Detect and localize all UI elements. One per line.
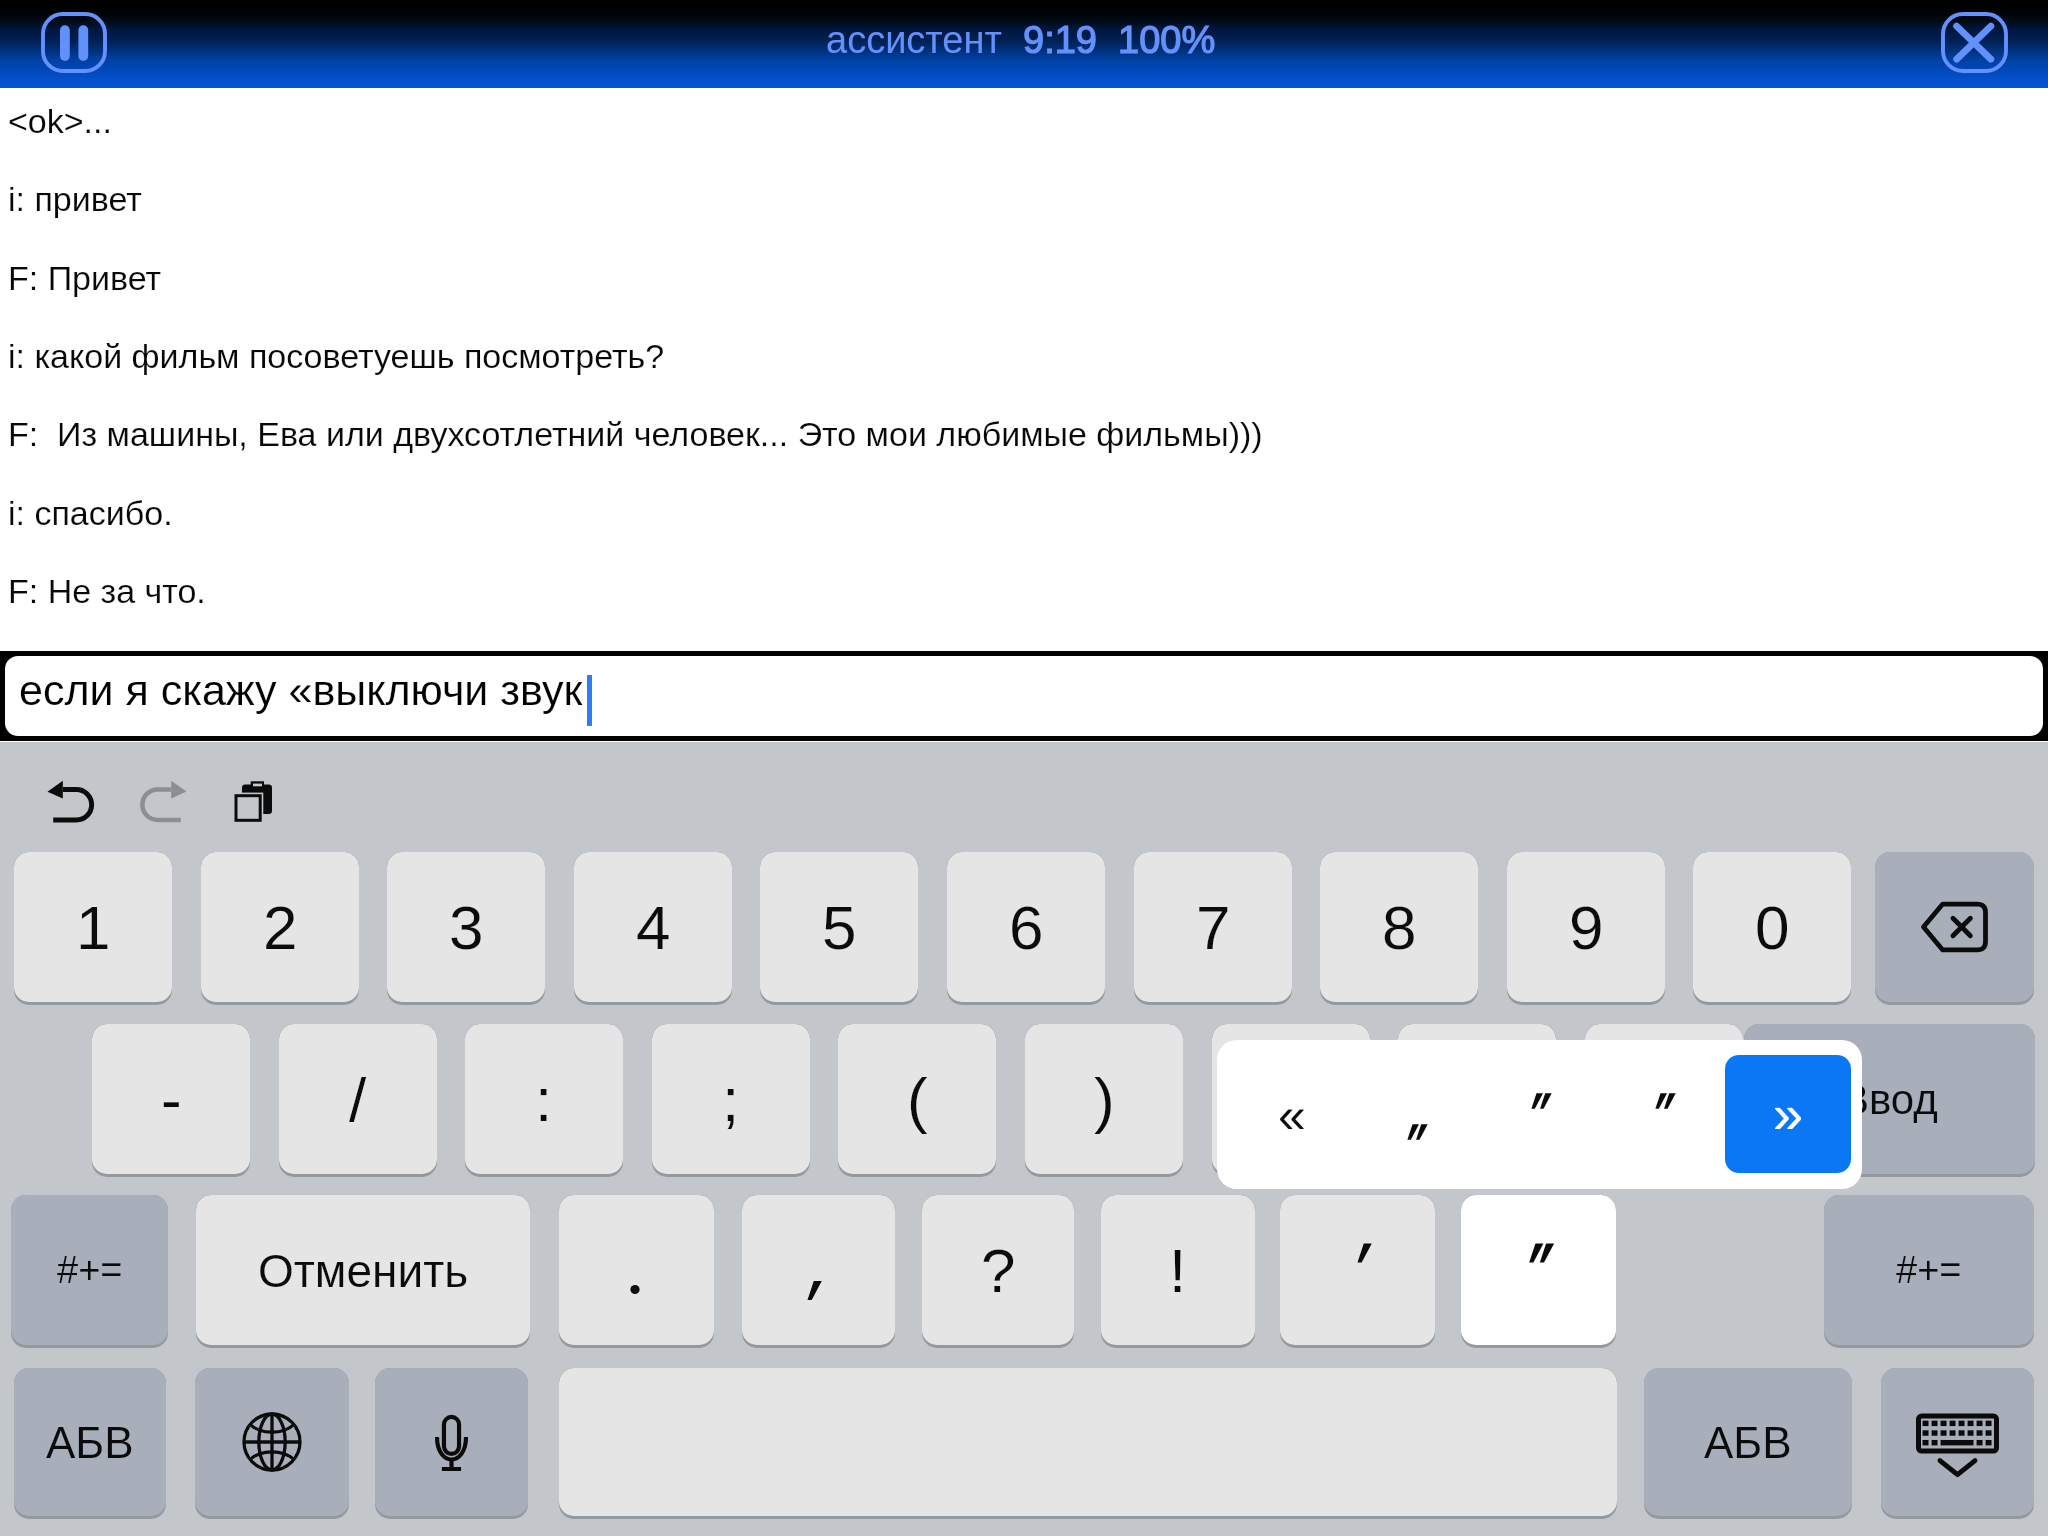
button[interactable]: 2 bbox=[201, 852, 359, 1002]
staticText: » bbox=[1773, 1084, 1804, 1144]
staticText: 6 bbox=[1009, 893, 1044, 962]
staticText: 5 bbox=[822, 893, 857, 962]
button[interactable]: Undo bbox=[47, 780, 95, 823]
staticText: ( bbox=[907, 1065, 928, 1134]
button[interactable]: если я скажу «выключи звук bbox=[5, 656, 2043, 736]
button[interactable]: High quote 2 bbox=[1613, 1071, 1713, 1131]
button[interactable]: ! bbox=[1101, 1195, 1255, 1345]
staticText: 1 bbox=[76, 893, 111, 962]
button[interactable]: » bbox=[1725, 1055, 1851, 1173]
button[interactable]: Quote bbox=[1461, 1195, 1616, 1345]
staticText: #+= bbox=[1896, 1249, 1962, 1291]
button[interactable]: Close bbox=[1941, 12, 2008, 73]
button[interactable]: 9 bbox=[1507, 852, 1665, 1002]
button[interactable]: ? bbox=[922, 1195, 1074, 1345]
staticText: 9 bbox=[1569, 893, 1604, 962]
staticText: i: спасибо. bbox=[8, 494, 173, 532]
staticText: АБВ bbox=[46, 1418, 134, 1467]
staticText: 4 bbox=[636, 893, 671, 962]
staticText: ; bbox=[722, 1065, 740, 1134]
button[interactable]: / bbox=[279, 1024, 437, 1174]
staticText: ) bbox=[1094, 1065, 1115, 1134]
staticText: F: Привет bbox=[8, 259, 162, 297]
button[interactable]: 1 bbox=[14, 852, 172, 1002]
button[interactable]: Change language bbox=[195, 1368, 349, 1516]
button[interactable]: 7 bbox=[1134, 852, 1292, 1002]
button[interactable]: Low quote bbox=[1365, 1102, 1465, 1162]
button[interactable]: Redo bbox=[139, 780, 187, 823]
button[interactable]: Pause bbox=[41, 12, 107, 73]
button[interactable]: 8 bbox=[1320, 852, 1478, 1002]
staticText: i: какой фильм посоветуешь посмотреть? bbox=[8, 337, 665, 375]
button[interactable]: 0 bbox=[1693, 852, 1851, 1002]
button[interactable]: Period bbox=[559, 1195, 714, 1345]
button[interactable]: АБВ bbox=[1644, 1368, 1852, 1516]
button[interactable]: ; bbox=[652, 1024, 810, 1174]
staticText: АБВ bbox=[1704, 1418, 1792, 1467]
staticText: если я скажу «выключи звук bbox=[19, 666, 583, 714]
staticText: i: привет bbox=[8, 180, 142, 218]
staticText: ! bbox=[1169, 1236, 1187, 1305]
button[interactable]: & bbox=[1398, 1024, 1556, 1174]
staticText: 9:19 100% bbox=[1023, 19, 1216, 61]
button[interactable]: ) bbox=[1025, 1024, 1183, 1174]
button[interactable]: « bbox=[1247, 1085, 1337, 1145]
staticText: #+= bbox=[57, 1249, 123, 1291]
button[interactable]: Comma bbox=[742, 1195, 895, 1345]
staticText: « bbox=[1278, 1087, 1306, 1143]
button[interactable]: #+= bbox=[11, 1195, 168, 1345]
staticText: 3 bbox=[449, 893, 484, 962]
button[interactable]: ₽ bbox=[1212, 1024, 1370, 1174]
button[interactable]: АБВ bbox=[14, 1368, 166, 1516]
button[interactable]: @ bbox=[1585, 1024, 1743, 1174]
staticText: F: Не за что. bbox=[8, 572, 206, 610]
staticText: Отменить bbox=[258, 1245, 469, 1296]
button[interactable]: Voice input bbox=[375, 1368, 528, 1516]
staticText: ? bbox=[981, 1236, 1016, 1305]
staticText: / bbox=[349, 1065, 367, 1134]
button[interactable]: Ввод bbox=[1744, 1024, 2035, 1174]
staticText: 2 bbox=[263, 893, 298, 962]
button[interactable]: Отменить bbox=[196, 1195, 530, 1345]
button[interactable]: : bbox=[465, 1024, 623, 1174]
staticText: F: Из машины, Ева или двухсотлетний чело… bbox=[8, 415, 1263, 453]
button[interactable]: Apostrophe bbox=[1280, 1195, 1435, 1345]
button[interactable]: Backspace bbox=[1875, 852, 2034, 1002]
staticText: ассистент bbox=[826, 19, 1002, 61]
staticText: : bbox=[535, 1065, 553, 1134]
button[interactable]: Hide keyboard bbox=[1881, 1368, 2034, 1516]
button[interactable]: - bbox=[92, 1024, 250, 1174]
button[interactable]: High quote bbox=[1489, 1071, 1589, 1131]
button[interactable]: Paste bbox=[234, 779, 276, 823]
button[interactable]: 6 bbox=[947, 852, 1105, 1002]
button[interactable]: ( bbox=[838, 1024, 996, 1174]
staticText: @ bbox=[1633, 1065, 1696, 1134]
button[interactable]: 3 bbox=[387, 852, 545, 1002]
staticText: - bbox=[161, 1065, 182, 1134]
staticText: 0 bbox=[1755, 893, 1790, 962]
button[interactable]: #+= bbox=[1824, 1195, 2034, 1345]
staticText: ₽ bbox=[1273, 1057, 1310, 1141]
staticText: 8 bbox=[1382, 893, 1417, 962]
staticText: Ввод bbox=[1841, 1076, 1938, 1123]
button[interactable]: 5 bbox=[760, 852, 918, 1002]
staticText: 7 bbox=[1196, 893, 1231, 962]
staticText: <ok>... bbox=[8, 102, 112, 140]
button[interactable]: 4 bbox=[574, 852, 732, 1002]
